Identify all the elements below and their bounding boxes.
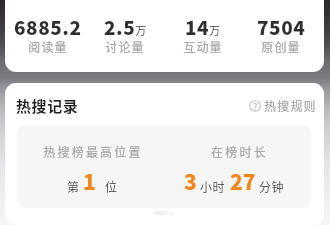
staticText: 7504 [257, 13, 306, 41]
staticText: 位 [105, 178, 118, 195]
staticText: 3 [184, 166, 197, 196]
button[interactable]: 14万 [164, 13, 242, 58]
button[interactable]: 热搜规则 [249, 93, 317, 118]
button[interactable]: 热搜榜最高位置 [17, 125, 164, 208]
staticText: 原创量 [261, 38, 301, 55]
staticText: 2.5万 [104, 13, 147, 41]
staticText: 热搜榜最高位置 [43, 143, 143, 160]
staticText: 6885.2 [14, 13, 82, 41]
staticText: 小时 [200, 178, 226, 195]
staticText: 1 [83, 166, 96, 196]
other: 热搜规则 [249, 100, 261, 112]
staticText: 热搜规则 [264, 97, 317, 114]
staticText: 27 [230, 166, 256, 196]
staticText: 互动量 [183, 38, 223, 55]
staticText: 第 [67, 178, 80, 195]
staticText: 14万 [185, 13, 221, 41]
button[interactable]: 6885.2 [9, 13, 86, 58]
staticText: 分钟 [259, 178, 285, 195]
button[interactable]: 7504 [242, 13, 320, 58]
staticText: 阅读量 [28, 38, 68, 55]
staticText: 讨论量 [105, 38, 145, 55]
button[interactable]: 2.5万 [86, 13, 164, 58]
button[interactable]: 在榜时长 [164, 125, 311, 208]
staticText: 在榜时长 [211, 143, 268, 160]
staticText: 热搜记录 [16, 95, 79, 117]
staticText: ? [253, 100, 258, 112]
